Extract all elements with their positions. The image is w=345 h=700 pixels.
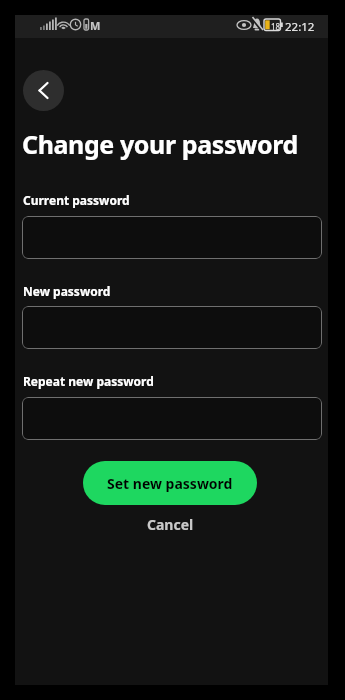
staticText: 22:12 <box>285 19 315 35</box>
button[interactable]: Cancel <box>83 513 257 535</box>
staticText: M <box>90 18 101 33</box>
staticText: Cancel <box>147 515 194 534</box>
staticText: 18 <box>271 21 281 32</box>
button[interactable] <box>22 306 322 349</box>
button[interactable] <box>22 216 322 259</box>
staticText: Repeat new password <box>23 373 154 389</box>
staticText: Change your password <box>22 127 298 161</box>
button[interactable]: Set new password <box>83 461 257 505</box>
button[interactable] <box>22 397 322 440</box>
button[interactable] <box>23 70 64 111</box>
staticText: Set new password <box>107 474 233 493</box>
staticText: New password <box>23 283 111 299</box>
staticText: Current password <box>23 192 130 208</box>
